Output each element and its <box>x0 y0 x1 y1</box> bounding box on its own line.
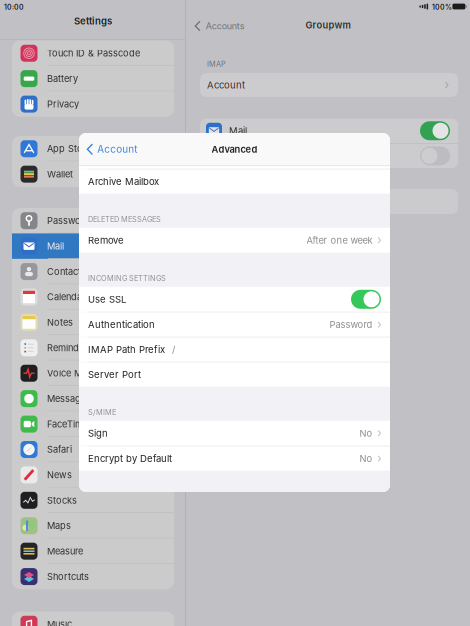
button[interactable]: Passwords <box>12 208 174 233</box>
button[interactable]: Battery <box>12 66 174 91</box>
button[interactable]: Notes <box>12 310 174 335</box>
button[interactable]: Server Port <box>79 362 390 387</box>
button[interactable]: Measure <box>12 538 174 564</box>
button[interactable]: Account <box>200 73 458 97</box>
button[interactable]: Account <box>79 133 145 165</box>
button[interactable]: Touch ID & Passcode <box>12 40 174 66</box>
staticText: Accounts <box>206 20 245 31</box>
staticText: S/MIME <box>88 408 116 417</box>
staticText: 100% <box>432 3 452 11</box>
staticText: No <box>360 428 373 439</box>
staticText: Safari <box>47 444 72 455</box>
button[interactable]: App Store <box>12 136 174 161</box>
staticText: Mail <box>229 125 247 136</box>
staticText: After one week <box>307 235 373 246</box>
staticText: Reminders <box>47 342 92 353</box>
staticText: Account <box>97 143 137 155</box>
staticText: Encrypt by Default <box>88 453 172 464</box>
staticText: DELETED MESSAGES <box>88 215 161 224</box>
staticText: Account <box>207 79 245 91</box>
button[interactable]: Calendar <box>12 284 174 310</box>
staticText: News <box>47 469 72 480</box>
button[interactable]: Encrypt by Default <box>79 446 390 471</box>
button[interactable]: Contacts <box>12 259 174 284</box>
staticText: Voice Memos <box>47 368 106 379</box>
staticText: / <box>172 344 175 355</box>
staticText: App Store <box>47 143 91 154</box>
staticText: Notes <box>47 317 73 328</box>
staticText: Passwords <box>47 215 95 226</box>
button[interactable]: Authentication <box>79 312 390 337</box>
staticText: Contacts <box>47 266 86 277</box>
button[interactable]: Shortcuts <box>12 564 174 589</box>
button[interactable]: Use SSL <box>79 287 390 312</box>
staticText: Privacy <box>47 98 79 110</box>
staticText: INCOMING SETTINGS <box>88 274 166 283</box>
staticText: Music <box>47 619 72 626</box>
staticText: Calendar <box>47 291 85 302</box>
staticText: Stocks <box>47 495 77 506</box>
button[interactable]: IMAP Path Prefix <box>79 337 390 362</box>
staticText: Advanced <box>211 144 257 155</box>
staticText: Maps <box>47 520 71 531</box>
staticText: IMAP <box>207 60 226 68</box>
staticText: Authentication <box>88 319 155 330</box>
staticText: FaceTime <box>47 418 88 430</box>
staticText: Remove <box>88 235 124 246</box>
button[interactable]: Music <box>12 611 174 626</box>
staticText: Password <box>330 319 373 330</box>
button[interactable]: Messages <box>12 386 174 411</box>
staticText: Sign <box>88 428 108 439</box>
staticText: Wallet <box>47 169 73 180</box>
staticText: Use SSL <box>88 294 126 305</box>
staticText: No <box>360 453 373 464</box>
staticText: Touch ID & Passcode <box>47 48 140 59</box>
button[interactable]: Stocks <box>12 488 174 513</box>
staticText: Archive Mailbox <box>88 176 159 187</box>
staticText: Server Port <box>88 369 141 380</box>
staticText: Settings <box>74 15 112 27</box>
button[interactable]: Voice Memos <box>12 360 174 386</box>
button[interactable]: Reminders <box>12 335 174 360</box>
staticText: 10:00 <box>4 3 24 11</box>
staticText: Battery <box>47 73 78 84</box>
button[interactable]: Accounts <box>186 13 251 39</box>
button[interactable]: Wallet <box>12 161 174 187</box>
staticText: Mail <box>47 241 64 252</box>
button[interactable]: Maps <box>12 513 174 538</box>
staticText: Shortcuts <box>47 571 89 582</box>
staticText: Measure <box>47 546 83 557</box>
staticText: Messages <box>47 393 91 404</box>
button[interactable]: Safari <box>12 437 174 462</box>
staticText: Groupwm <box>305 19 350 31</box>
button[interactable]: News <box>12 462 174 488</box>
button[interactable]: Archive Mailbox <box>79 169 390 194</box>
button[interactable]: Mail <box>12 233 174 259</box>
staticText: IMAP Path Prefix <box>88 344 165 355</box>
button[interactable]: FaceTime <box>12 411 174 437</box>
button[interactable]: Sign <box>79 421 390 446</box>
button[interactable]: Remove <box>79 228 390 253</box>
button[interactable]: Privacy <box>12 91 174 117</box>
